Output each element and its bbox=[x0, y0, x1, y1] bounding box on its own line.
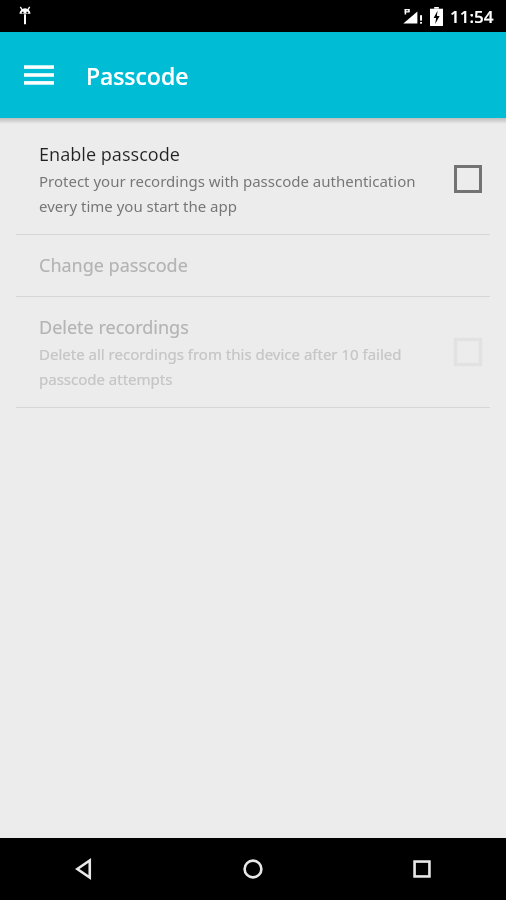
button[interactable]: Home bbox=[168, 838, 337, 900]
button[interactable]: Enable passcode bbox=[0, 124, 506, 234]
staticText: Change passcode bbox=[39, 253, 188, 278]
button[interactable]: Open navigation menu bbox=[10, 46, 68, 104]
staticText: Enable passcode bbox=[39, 142, 180, 167]
staticText: Passcode bbox=[86, 60, 189, 91]
button[interactable]: Back bbox=[0, 838, 168, 900]
button[interactable]: Recent apps bbox=[337, 838, 506, 900]
staticText: Delete all recordings from this device a… bbox=[39, 344, 430, 389]
staticText: 11:54 bbox=[450, 5, 494, 28]
button[interactable]: Delete recordings bbox=[0, 297, 506, 407]
button[interactable]: Delete recordings checkbox bbox=[446, 330, 490, 374]
button[interactable]: Enable passcode checkbox bbox=[446, 157, 490, 201]
button[interactable]: Change passcode bbox=[0, 235, 506, 296]
staticText: Delete recordings bbox=[39, 315, 189, 340]
staticText: Protect your recordings with passcode au… bbox=[39, 171, 430, 216]
